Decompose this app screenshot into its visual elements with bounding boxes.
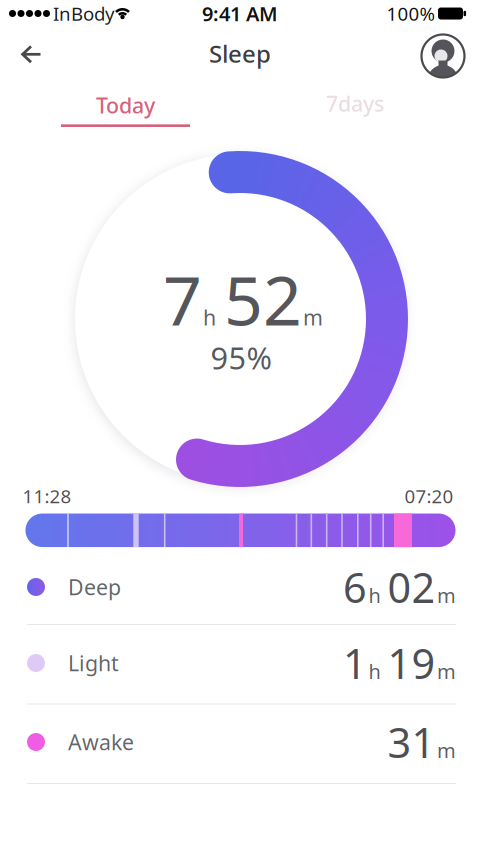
staticText: Today [96, 91, 155, 119]
staticText: 9:41 AM [202, 0, 278, 27]
staticText: m [437, 737, 456, 764]
staticText: h [203, 303, 216, 331]
staticText: Deep [68, 573, 121, 601]
staticText: h [368, 658, 380, 685]
staticText: 11:28 [22, 484, 71, 508]
staticText: m [437, 658, 456, 685]
staticText: 95% [210, 337, 271, 378]
staticText: 1 [343, 636, 367, 690]
staticText: 52 [224, 254, 302, 344]
staticText: Awake [68, 728, 134, 756]
staticText: 6 [343, 560, 367, 614]
button[interactable]: Today [61, 91, 190, 127]
staticText: Light [68, 649, 119, 677]
button[interactable]: 7days [290, 88, 419, 118]
button[interactable]: Profile [421, 34, 464, 77]
staticText: 7days [326, 89, 384, 118]
staticText: InBody [53, 1, 115, 26]
staticText: m [303, 303, 323, 331]
staticText: 19 [387, 636, 435, 690]
staticText: 07:20 [404, 484, 453, 508]
staticText: 7 [163, 254, 202, 344]
staticText: Sleep [209, 38, 271, 69]
staticText: h [368, 582, 380, 609]
staticText: m [437, 582, 456, 609]
staticText: 02 [387, 560, 435, 614]
staticText: 31 [387, 715, 435, 769]
staticText: 100% [386, 1, 435, 26]
button[interactable]: Back [13, 36, 49, 72]
